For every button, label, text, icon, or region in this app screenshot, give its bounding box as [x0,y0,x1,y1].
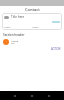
staticText: Section header [3,33,25,37]
staticText: Label [4,25,11,28]
staticText: ACTION [51,47,61,50]
button[interactable]: Name [3,39,61,45]
button[interactable]: Title here [2,13,62,30]
staticText: Title here [11,15,25,19]
staticText: Sub [11,42,15,45]
staticText: Label [32,25,39,28]
button[interactable]: Nav [47,94,51,98]
button[interactable]: Nav [30,94,34,98]
staticText: Name [11,39,19,42]
button[interactable]: Nav [13,94,17,98]
staticText: Contact [25,7,40,12]
